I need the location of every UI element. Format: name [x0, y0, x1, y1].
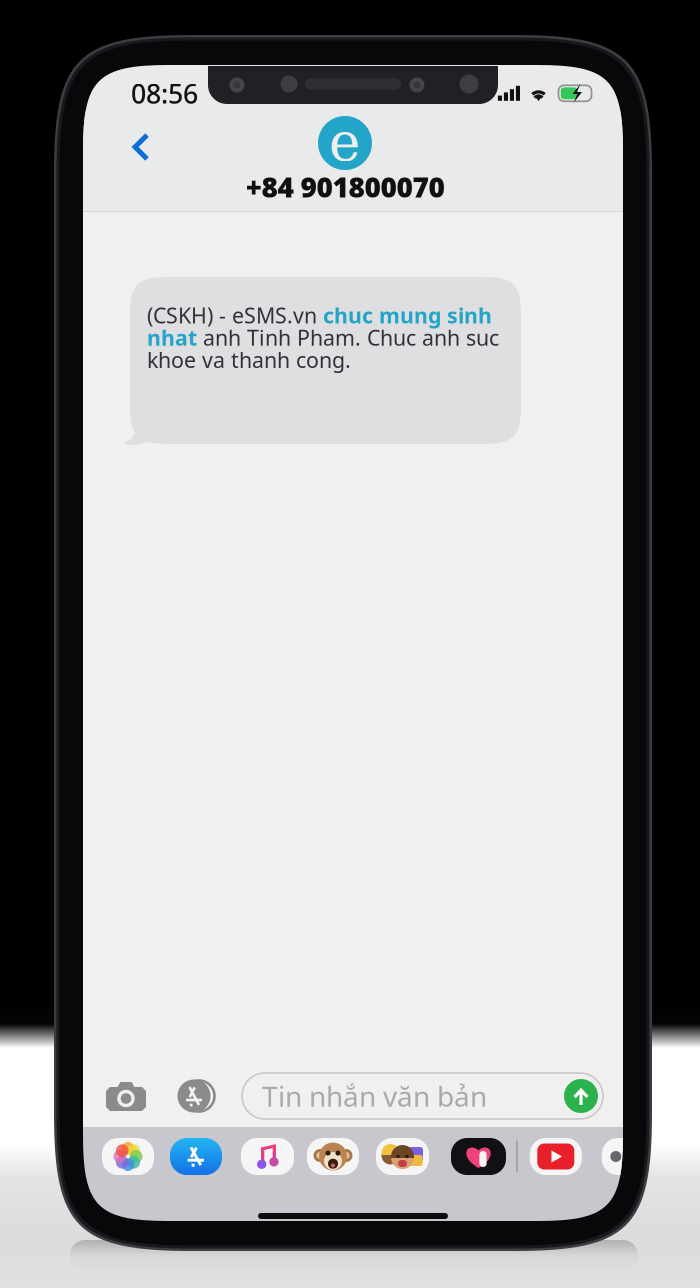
button[interactable]: Camera	[103, 1074, 149, 1118]
button[interactable]: Photos	[102, 1138, 154, 1175]
button[interactable]: More	[602, 1138, 654, 1175]
button[interactable]: Animoji	[307, 1138, 359, 1175]
staticText: e	[329, 111, 361, 173]
button[interactable]: Memoji	[376, 1138, 429, 1175]
button[interactable]: Apps	[173, 1074, 215, 1118]
staticText: (CSKH) - eSMS.vn chuc mung sinh nhat anh…	[147, 301, 499, 374]
button[interactable]: Music	[241, 1138, 294, 1175]
button[interactable]: Back	[117, 123, 165, 171]
button[interactable]: YouTube	[530, 1138, 582, 1175]
staticText: Tin nhắn văn bản	[262, 1077, 487, 1115]
staticText: +84 901800070	[245, 168, 444, 205]
button[interactable]: App Store	[170, 1138, 222, 1175]
button[interactable]: Health	[451, 1138, 506, 1175]
button[interactable]: Tin nhắn văn bản	[242, 1073, 603, 1119]
staticText: 08:56	[131, 76, 198, 111]
